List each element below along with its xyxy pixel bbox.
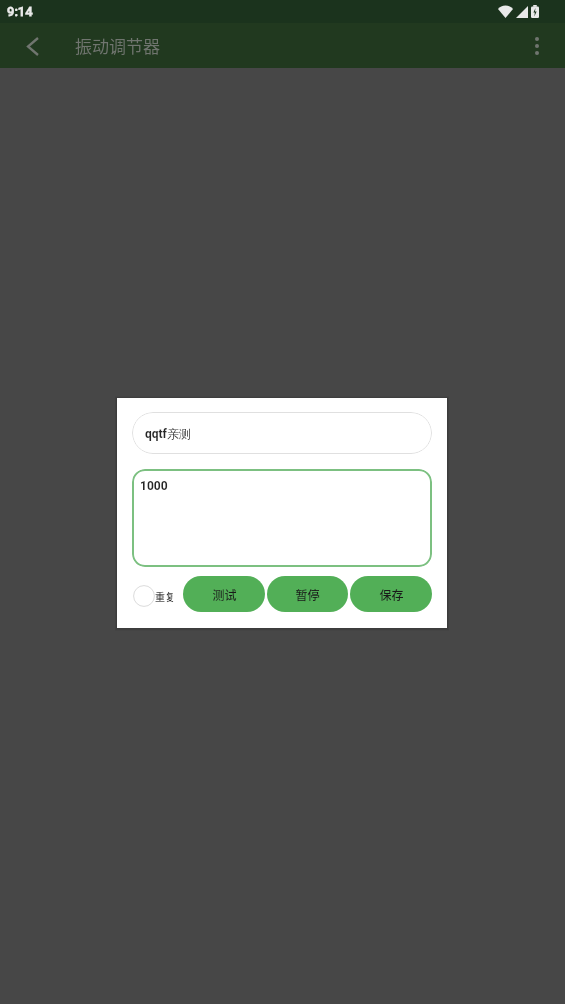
staticText: qqtf亲测: [145, 426, 191, 441]
button[interactable]: Back: [18, 31, 48, 61]
staticText: 重复: [155, 589, 175, 603]
button[interactable]: 暂停: [267, 576, 348, 612]
staticText: 振动调节器: [75, 33, 160, 58]
staticText: 9:14: [7, 4, 33, 19]
button[interactable]: 保存: [350, 576, 432, 612]
button[interactable]: qqtf亲测: [132, 412, 432, 454]
staticText: 1000: [140, 479, 168, 493]
staticText: 保存: [379, 586, 404, 603]
staticText: 测试: [212, 586, 237, 603]
button[interactable]: 测试: [183, 576, 265, 612]
staticText: 暂停: [295, 586, 320, 603]
button[interactable]: 重复: [132, 585, 176, 607]
button[interactable]: More options: [519, 28, 555, 64]
button[interactable]: 1000: [132, 469, 432, 567]
